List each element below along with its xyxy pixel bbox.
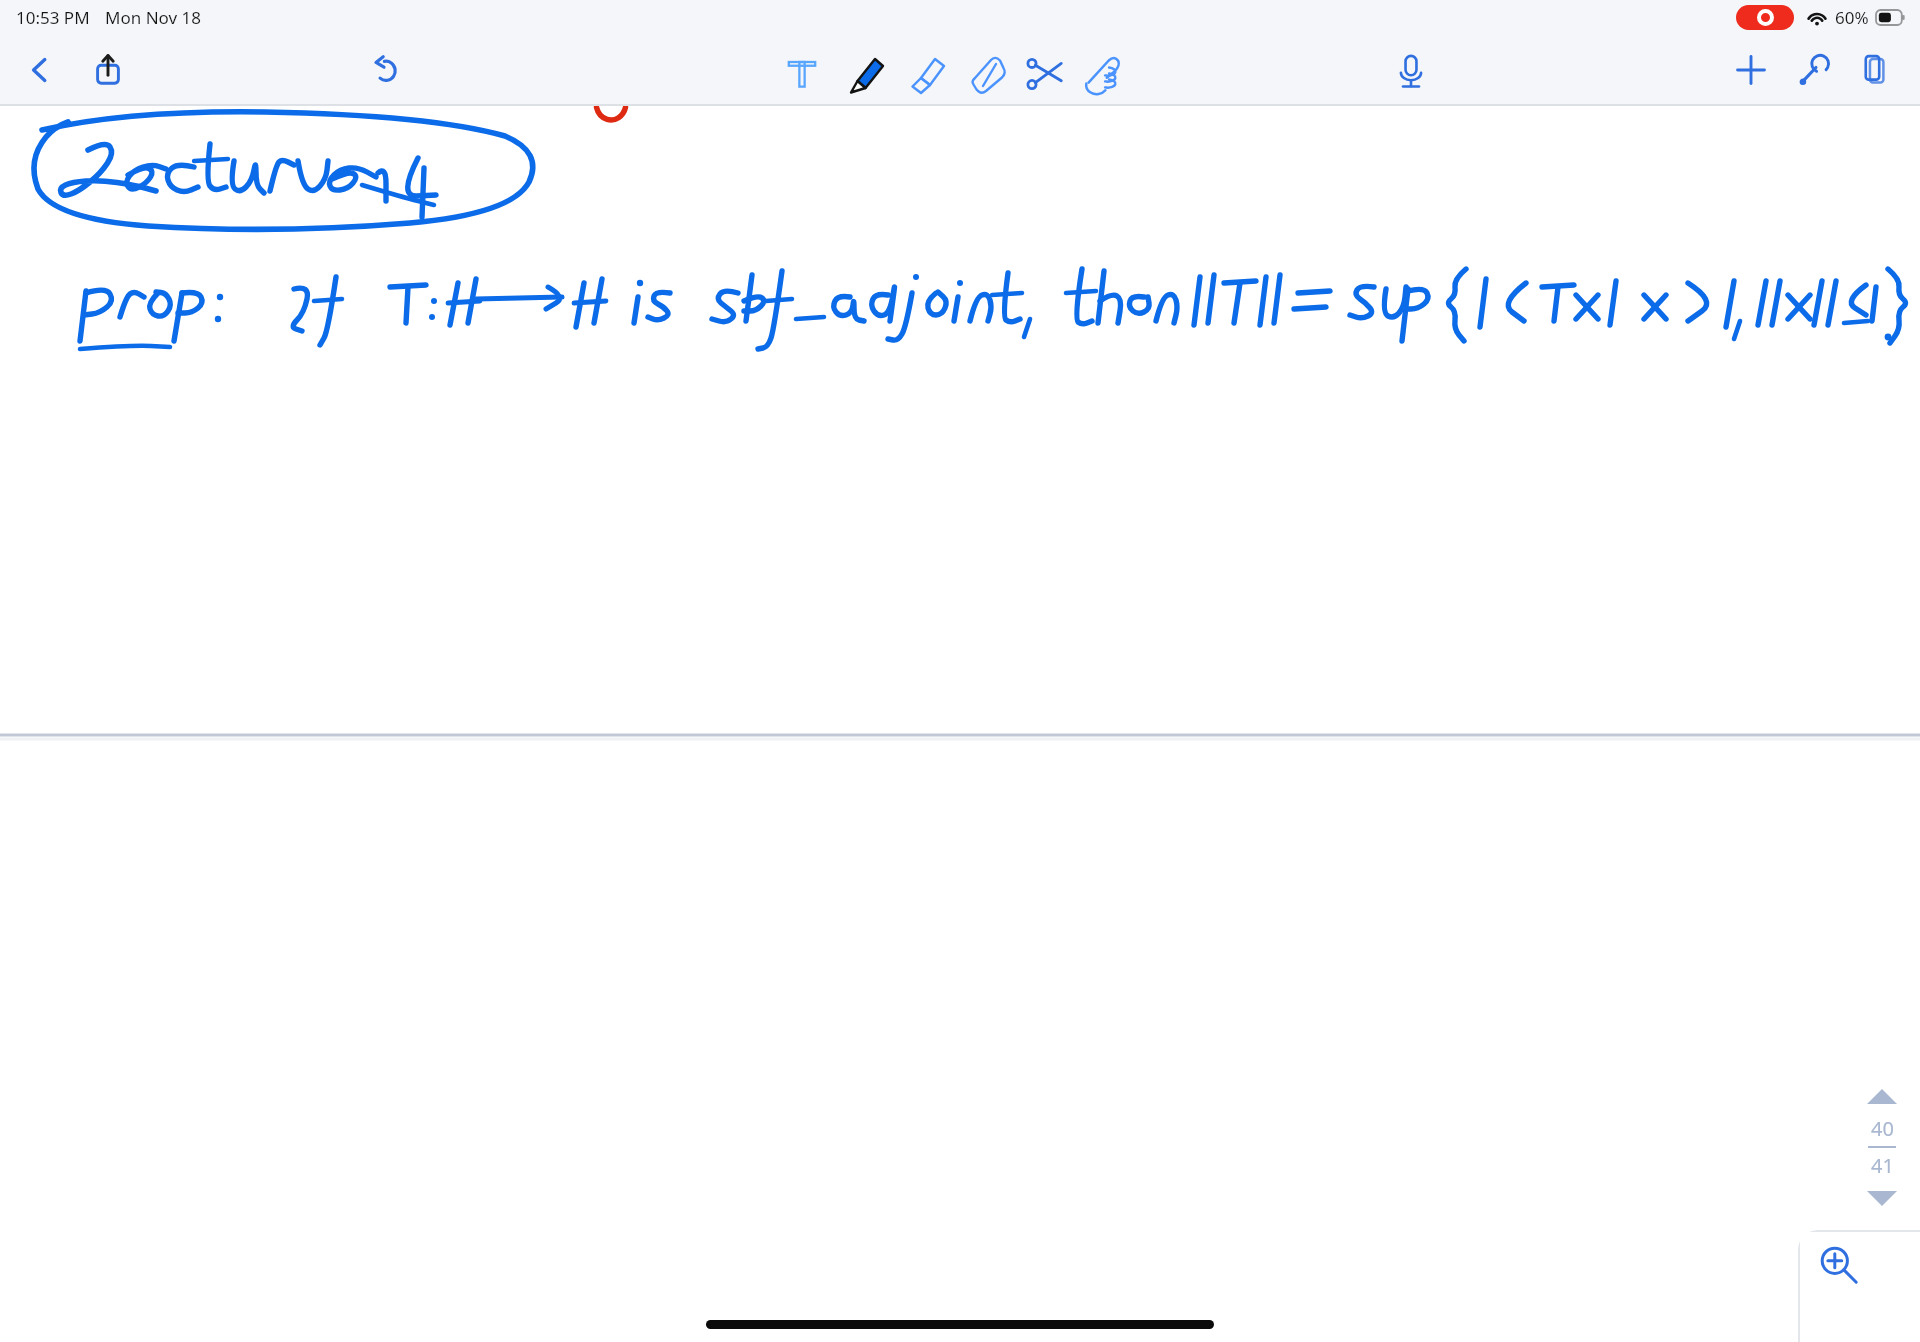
button[interactable]: Screen recording — [1736, 5, 1794, 30]
staticText: 10:53 PM — [16, 6, 90, 29]
staticText: 60% — [1835, 6, 1869, 29]
staticText: Mon Nov 18 — [105, 6, 201, 29]
button[interactable]: Back — [20, 50, 60, 90]
button[interactable]: Eraser — [960, 48, 1010, 98]
button[interactable]: Highlighter — [900, 48, 950, 98]
button[interactable]: 40 — [1871, 1115, 1894, 1142]
button[interactable]: Lasso select — [1078, 49, 1126, 97]
button[interactable]: Pages — [1854, 49, 1896, 91]
button[interactable]: Text tool — [780, 51, 824, 95]
button[interactable]: Settings — [1792, 49, 1834, 91]
button[interactable]: Undo — [366, 50, 406, 90]
button[interactable]: 41 — [1871, 1152, 1894, 1179]
button[interactable]: Share — [88, 50, 128, 90]
button[interactable]: Previous page — [1864, 1085, 1900, 1107]
button[interactable]: Next page — [1864, 1187, 1900, 1209]
button[interactable]: Pen tool — [840, 48, 890, 98]
button[interactable]: Add — [1730, 49, 1772, 91]
button[interactable]: Cut — [1020, 49, 1068, 97]
button[interactable]: Zoom in — [1798, 1230, 1920, 1342]
button[interactable]: Record audio — [1390, 50, 1432, 92]
